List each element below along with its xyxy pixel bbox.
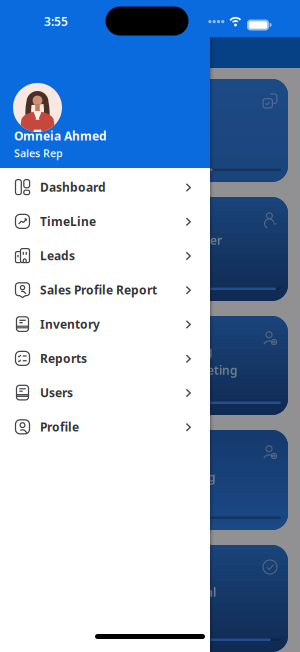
staticText: campaign meeting (126, 362, 238, 378)
button[interactable]: Leads (0, 238, 210, 273)
staticText: Follow up with borrower (81, 232, 222, 248)
button[interactable]: Send project proposal (12, 545, 288, 652)
button[interactable]: Inventory (0, 307, 210, 341)
staticText: Send project proposal (88, 584, 216, 600)
staticText: Leads (40, 248, 75, 264)
button[interactable]: Plan the sales meeting (12, 430, 288, 530)
staticText: Call new lead (55, 118, 132, 134)
button[interactable]: Prepare the marketing (12, 316, 288, 415)
button[interactable]: Follow up with borrower (12, 197, 288, 301)
button[interactable]: Close menu (0, 37, 300, 652)
staticText: Inventory (40, 316, 100, 332)
button[interactable]: TimeLine (0, 204, 210, 238)
staticText: Profile (40, 419, 79, 435)
staticText: Omneia Ahmed (14, 128, 107, 144)
staticText: Users (40, 385, 73, 401)
staticText: Prepare the marketing (79, 343, 213, 359)
button[interactable]: Profile (0, 410, 210, 444)
button[interactable]: Dashboard (0, 170, 210, 204)
staticText: 3:55 (44, 13, 68, 29)
staticText: TimeLine (40, 213, 96, 229)
button[interactable]: Profile, Omneia Ahmed, Sales Rep (0, 0, 210, 168)
staticText: Reports (40, 350, 87, 366)
staticText: Sales Rep (14, 146, 63, 160)
staticText: Sales Profile Report (40, 282, 157, 298)
button[interactable]: Users (0, 375, 210, 410)
button[interactable]: Reports (0, 341, 210, 375)
button[interactable]: Sales Profile Report (0, 273, 210, 307)
staticText: Dashboard (40, 179, 106, 195)
staticText: Plan the sales meeting (83, 469, 216, 485)
button[interactable]: Call new lead (12, 79, 288, 182)
